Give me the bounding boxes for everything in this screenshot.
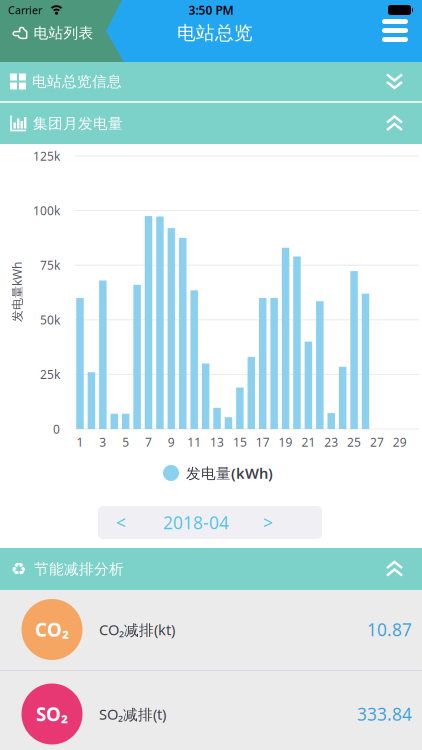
staticText: 17	[256, 434, 270, 450]
staticText: 1	[76, 434, 83, 450]
button[interactable]: ♻	[0, 548, 422, 590]
staticText: 9	[168, 434, 175, 450]
button[interactable]: 电站总览信息	[0, 62, 422, 101]
staticText: 75k	[40, 257, 60, 273]
staticText: CO₂减排(kt)	[99, 620, 175, 639]
staticText: <	[116, 511, 126, 534]
staticText: 7	[145, 434, 152, 450]
button[interactable]: 集团月发电量	[0, 103, 422, 144]
staticText: 3	[99, 434, 106, 450]
staticText: 50k	[40, 312, 60, 328]
staticText: 电站列表	[33, 24, 93, 42]
staticText: 13	[210, 434, 224, 450]
staticText: 27	[370, 434, 384, 450]
staticText: 25k	[40, 366, 60, 382]
staticText: 25	[347, 434, 361, 450]
staticText: 发电量kWh	[0, 284, 47, 300]
staticText: CO₂	[35, 617, 69, 642]
staticText: ♻	[11, 559, 27, 579]
staticText: 0	[53, 421, 60, 437]
staticText: 21	[301, 434, 315, 450]
staticText: 节能减排分析	[34, 560, 124, 578]
staticText: SO₂减排(t)	[99, 704, 166, 724]
staticText: 电站总览	[177, 21, 253, 44]
staticText: 11	[187, 434, 201, 450]
staticText: 10.87	[367, 618, 412, 641]
button[interactable]: Next month	[248, 506, 288, 539]
staticText: 19	[279, 434, 293, 450]
staticText: 电站总览信息	[32, 72, 122, 90]
staticText: 333.84	[357, 702, 412, 725]
staticText: 29	[393, 434, 407, 450]
staticText: Carrier	[8, 3, 42, 17]
staticText: SO₂	[36, 702, 68, 726]
staticText: 集团月发电量	[33, 114, 123, 132]
staticText: 15	[233, 434, 247, 450]
staticText: 125k	[33, 148, 60, 164]
button[interactable]: 电站列表	[1, 13, 105, 53]
staticText: 2018-04	[163, 511, 229, 534]
staticText: 发电量(kWh)	[186, 463, 273, 483]
button[interactable]: Menu	[379, 16, 411, 45]
staticText: 5	[122, 434, 129, 450]
staticText: 3:50 PM	[188, 2, 233, 18]
staticText: >	[263, 511, 273, 534]
button[interactable]: Previous month	[101, 506, 141, 539]
staticText: 100k	[33, 203, 60, 218]
staticText: 23	[324, 434, 338, 450]
